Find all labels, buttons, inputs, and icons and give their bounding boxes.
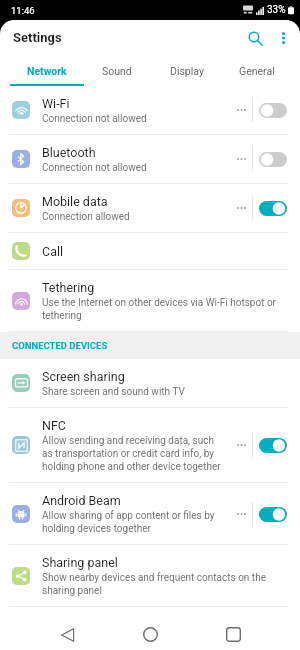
staticText: Call (42, 243, 64, 260)
staticText: Bluetooth (42, 144, 96, 161)
button[interactable]: Android Beam (0, 483, 300, 545)
button[interactable]: More options (270, 25, 296, 51)
button[interactable]: Bluetooth (0, 135, 300, 184)
staticText: Android Beam (42, 492, 121, 509)
staticText: 33% (267, 4, 286, 16)
button[interactable]: Tethering (0, 270, 300, 332)
button[interactable]: Recent apps (217, 619, 249, 650)
button[interactable]: Screen sharing (0, 359, 300, 408)
staticText: CONNECTED DEVICES (12, 340, 108, 351)
button[interactable]: Toggle Mobile data (253, 194, 292, 222)
button[interactable]: More options for Android Beam (231, 501, 252, 527)
button[interactable]: General (222, 55, 292, 86)
button[interactable]: More options for Bluetooth (231, 146, 252, 172)
staticText: Display (170, 65, 204, 77)
staticText: Mobile data (42, 193, 108, 210)
staticText: Connection not allowed (42, 112, 147, 125)
staticText: Connection not allowed (42, 161, 147, 174)
staticText: Allow sending and receiving data, such a… (42, 434, 221, 473)
staticText: Use the Internet on other devices via Wi… (42, 296, 285, 322)
button[interactable]: Mobile data (0, 184, 300, 233)
staticText: Share screen and sound with TV (42, 385, 185, 398)
staticText: Connection allowed (42, 210, 130, 223)
staticText: Sound (102, 65, 132, 77)
button[interactable]: Wi-Fi (0, 86, 300, 135)
button[interactable]: Network (12, 55, 82, 86)
staticText: 11:46 (11, 5, 35, 16)
staticText: Settings (13, 30, 62, 45)
button[interactable]: Home (134, 619, 166, 650)
staticText: Tethering (42, 279, 95, 296)
staticText: Network (27, 65, 67, 77)
staticText: Allow sharing of app content or files by… (42, 509, 221, 535)
staticText: NFC (42, 417, 66, 434)
button[interactable]: Toggle Bluetooth (253, 145, 292, 173)
button[interactable]: Call (0, 233, 300, 270)
button[interactable]: Sound (82, 55, 152, 86)
button[interactable]: Toggle Wi-Fi (253, 96, 292, 124)
staticText: Sharing panel (42, 554, 118, 571)
staticText: Wi-Fi (42, 95, 70, 112)
button[interactable]: More options for Mobile data (231, 195, 252, 221)
button[interactable]: NFC (0, 408, 300, 483)
button[interactable]: Search (240, 23, 270, 53)
button[interactable]: Toggle NFC (253, 431, 292, 459)
staticText: Show nearby devices and frequent contact… (42, 571, 285, 597)
button[interactable]: Back (51, 619, 83, 650)
staticText: General (239, 65, 275, 77)
button[interactable]: Sharing panel (0, 545, 300, 607)
button[interactable]: More options for NFC (231, 432, 252, 458)
button[interactable]: Toggle Android Beam (253, 500, 292, 528)
staticText: Screen sharing (42, 368, 125, 385)
button[interactable]: More options for Wi-Fi (231, 97, 252, 123)
button[interactable]: Display (152, 55, 222, 86)
